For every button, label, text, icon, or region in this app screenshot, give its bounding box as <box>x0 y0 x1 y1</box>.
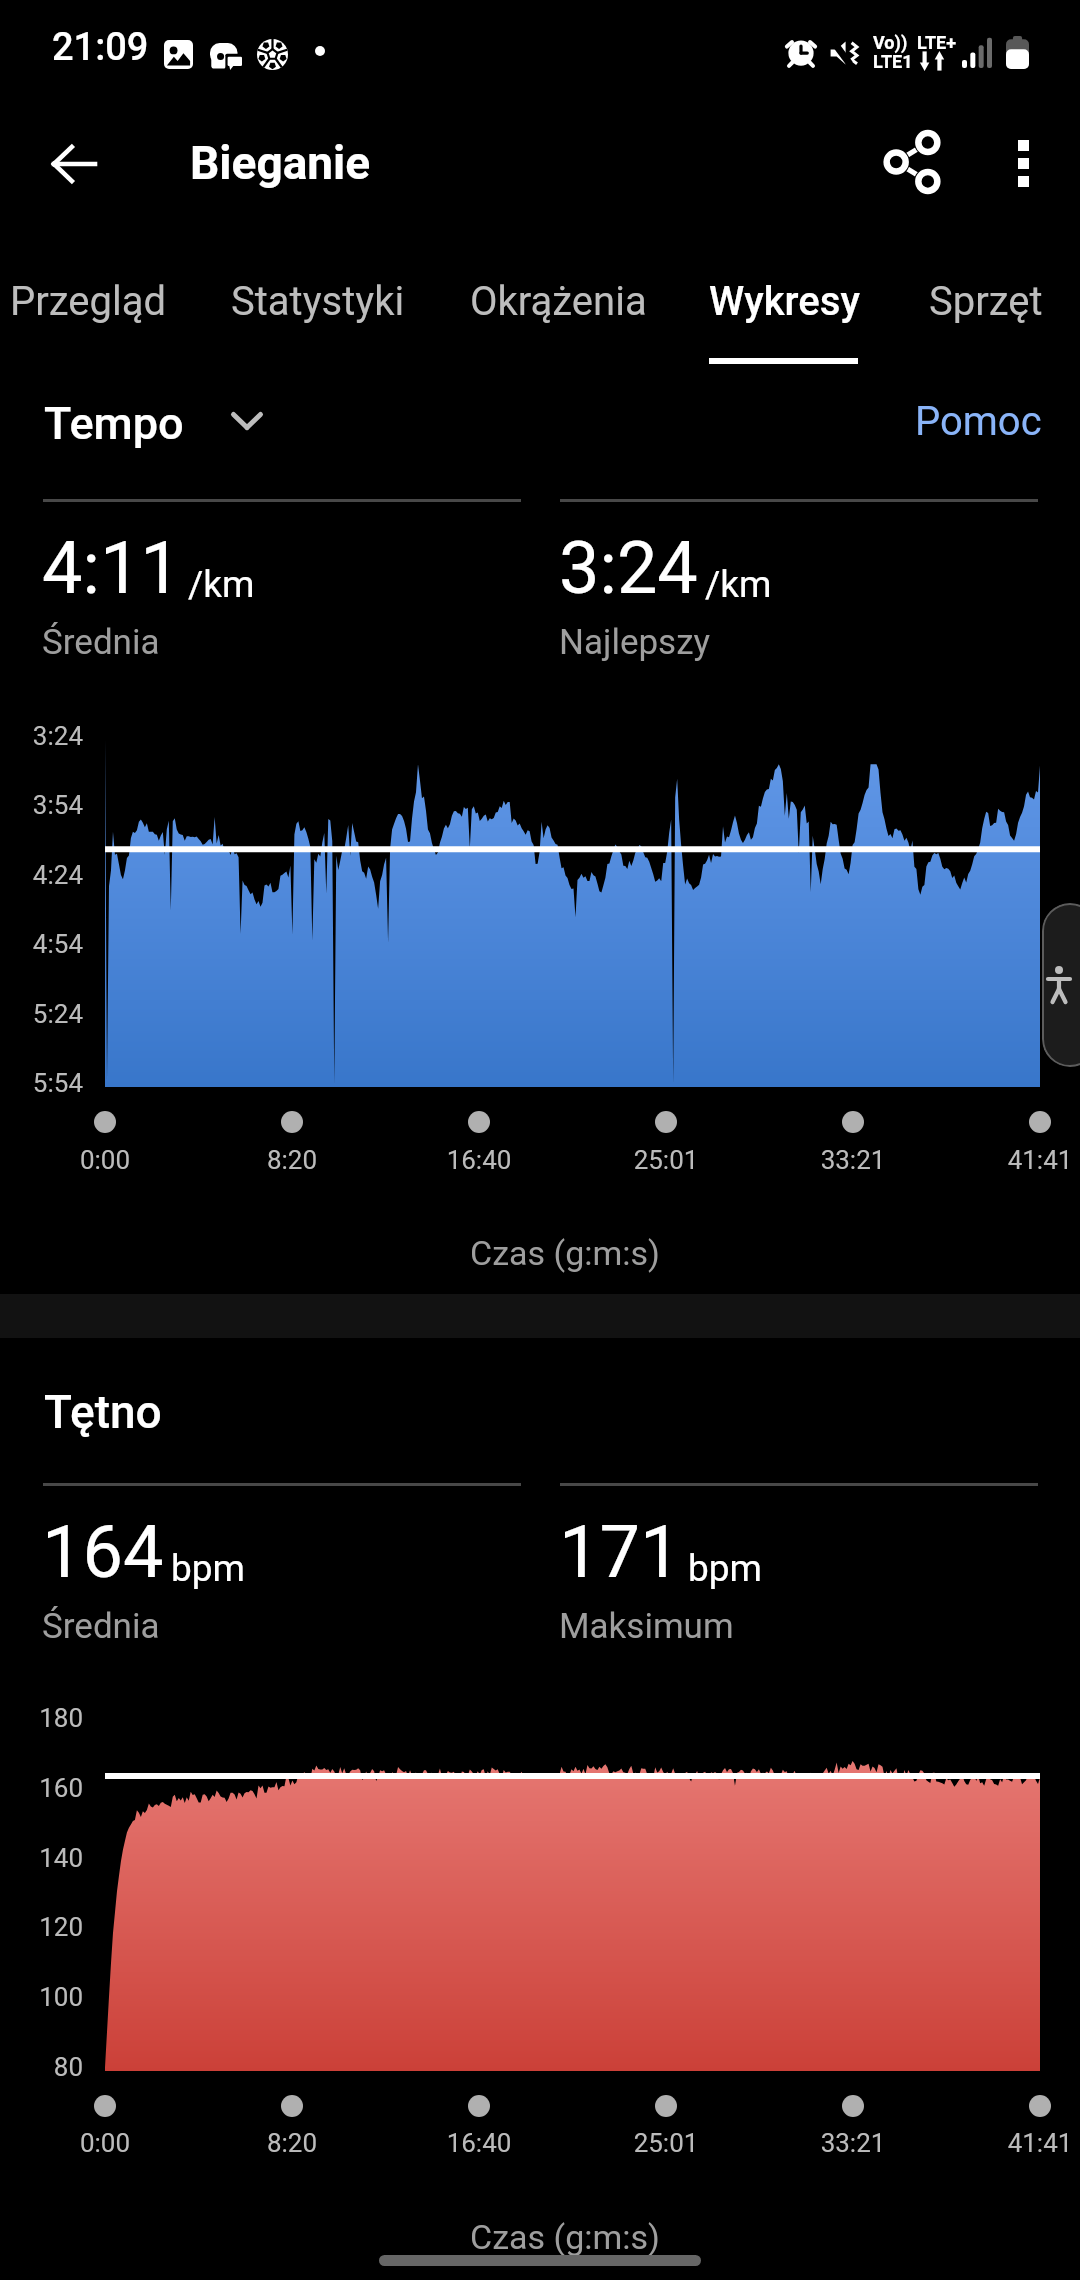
staticText: 3:24 <box>559 526 698 610</box>
staticText: 25:01 <box>576 1145 756 1175</box>
button[interactable]: Share <box>857 107 967 217</box>
staticText: Vo)) <box>873 32 908 53</box>
staticText: Bieganie <box>190 136 371 190</box>
staticText: 41:41 <box>950 1145 1080 1175</box>
staticText: bpm <box>688 1547 762 1590</box>
button[interactable]: Sprzęt <box>903 256 1069 368</box>
button[interactable]: Okrążenia <box>444 256 676 368</box>
button[interactable]: Accessibility <box>1042 903 1080 1067</box>
staticText: /km <box>705 563 772 606</box>
staticText: Sprzęt <box>929 278 1043 325</box>
staticText: 16:40 <box>389 1145 569 1175</box>
button[interactable]: Pomoc <box>895 386 1060 456</box>
staticText: Średnia <box>42 622 160 663</box>
staticText: Przegląd <box>10 278 167 325</box>
staticText: 8:20 <box>202 1145 382 1175</box>
button[interactable]: Przegląd <box>0 256 189 368</box>
staticText: 4:54 <box>0 929 83 959</box>
staticText: 8:20 <box>202 2128 382 2158</box>
staticText: 140 <box>0 1843 83 1873</box>
button[interactable]: More options <box>968 108 1078 218</box>
staticText: 100 <box>0 1982 83 2012</box>
staticText: Statystyki <box>231 278 405 325</box>
staticText: Najlepszy <box>559 622 711 663</box>
staticText: 180 <box>0 1703 83 1733</box>
button[interactable]: Back <box>19 109 129 219</box>
staticText: 33:21 <box>763 2128 943 2158</box>
staticText: 5:54 <box>0 1068 83 1098</box>
staticText: LTE1 <box>873 51 913 72</box>
staticText: 0:00 <box>15 2128 195 2158</box>
staticText: 164 <box>42 1510 164 1594</box>
staticText: 3:54 <box>0 790 83 820</box>
staticText: Czas (g:m:s) <box>50 1233 1080 1273</box>
button[interactable]: Wykresy <box>683 256 884 368</box>
staticText: 16:40 <box>389 2128 569 2158</box>
staticText: Tętno <box>44 1385 162 1439</box>
staticText: 0:00 <box>15 1145 195 1175</box>
staticText: 4:11 <box>42 526 181 610</box>
staticText: Maksimum <box>559 1606 734 1647</box>
staticText: 41:41 <box>950 2128 1080 2158</box>
staticText: 5:24 <box>0 999 83 1029</box>
staticText: 171 <box>559 1510 681 1594</box>
button[interactable]: Statystyki <box>205 256 429 368</box>
staticText: 3:24 <box>0 721 83 751</box>
staticText: bpm <box>171 1547 245 1590</box>
staticText: Pomoc <box>915 398 1042 445</box>
staticText: Średnia <box>42 1606 160 1647</box>
staticText: Czas (g:m:s) <box>50 2217 1080 2257</box>
staticText: /km <box>188 563 255 606</box>
staticText: 25:01 <box>576 2128 756 2158</box>
staticText: 80 <box>0 2052 83 2082</box>
staticText: 4:24 <box>0 860 83 890</box>
staticText: 120 <box>0 1912 83 1942</box>
staticText: 160 <box>0 1773 83 1803</box>
staticText: 21:09 <box>52 25 149 70</box>
staticText: Okrążenia <box>470 278 647 325</box>
staticText: 33:21 <box>763 1145 943 1175</box>
staticText: Tempo <box>44 397 184 450</box>
staticText: LTE+ <box>917 32 957 53</box>
staticText: Wykresy <box>709 278 860 325</box>
button[interactable]: Tempo <box>30 386 280 456</box>
